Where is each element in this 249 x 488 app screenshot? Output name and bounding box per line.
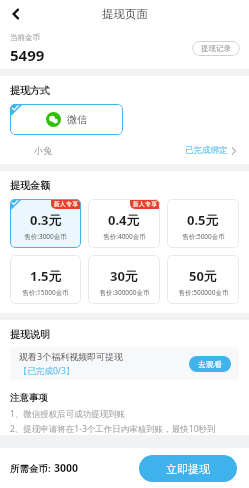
button[interactable]: 0.4元 bbox=[88, 199, 160, 248]
staticText: 新人专享 bbox=[54, 200, 78, 208]
button[interactable]: 30元 bbox=[88, 255, 160, 304]
staticText: 立即提现 bbox=[166, 462, 210, 476]
staticText: 5499 bbox=[10, 45, 45, 65]
staticText: 售价:5000金币 bbox=[182, 232, 225, 241]
staticText: 【已完成0/3】 bbox=[19, 365, 75, 377]
button[interactable]: 微信 bbox=[10, 104, 123, 135]
button[interactable]: 去观看 bbox=[189, 356, 231, 372]
staticText: 1.5元 bbox=[30, 267, 62, 285]
staticText: 提现说明 bbox=[10, 328, 50, 341]
staticText: 提现方式 bbox=[10, 84, 50, 97]
staticText: 提现页面 bbox=[102, 7, 148, 21]
staticText: 新人专享 bbox=[133, 200, 157, 208]
staticText: 去观看 bbox=[198, 359, 222, 369]
button[interactable]: 1.5元 bbox=[10, 255, 81, 304]
staticText: 30元 bbox=[110, 267, 138, 285]
staticText: 2、提现申请将在1-3个工作日内审核到账，最快10秒到 bbox=[10, 423, 216, 435]
staticText: 售价:300000金币 bbox=[99, 288, 150, 297]
staticText: 3000 bbox=[54, 461, 79, 475]
staticText: 注意事项 bbox=[10, 392, 48, 404]
staticText: 1、微信授权后可成功提现到账 bbox=[10, 408, 126, 420]
staticText: 售价:4000金币 bbox=[103, 232, 146, 241]
button[interactable]: 立即提现 bbox=[139, 455, 237, 482]
staticText: 微信 bbox=[67, 113, 87, 126]
button[interactable]: 50元 bbox=[167, 255, 239, 304]
staticText: 售价:3000金币 bbox=[24, 232, 67, 241]
button[interactable]: 提现记录 bbox=[192, 41, 240, 56]
staticText: 当前金币 bbox=[10, 33, 40, 42]
button[interactable]: 已完成绑定 bbox=[183, 143, 239, 158]
staticText: 售价:15000金币 bbox=[22, 288, 69, 297]
button[interactable]: 0.5元 bbox=[167, 199, 239, 248]
staticText: 50元 bbox=[189, 267, 217, 285]
staticText: 观看3个福利视频即可提现 bbox=[19, 350, 124, 362]
staticText: 已完成绑定 bbox=[185, 145, 228, 156]
button[interactable]: 返回 bbox=[5, 3, 27, 25]
staticText: 0.4元 bbox=[108, 211, 140, 229]
staticText: 0.5元 bbox=[187, 211, 219, 229]
staticText: 小兔 bbox=[34, 145, 52, 156]
button[interactable]: 0.3元 bbox=[10, 199, 81, 248]
staticText: 所需金币: bbox=[10, 462, 54, 475]
staticText: 提现金额 bbox=[10, 179, 50, 192]
staticText: 售价:500000金币 bbox=[178, 288, 229, 297]
staticText: 0.3元 bbox=[30, 211, 62, 229]
staticText: 提现记录 bbox=[201, 44, 231, 53]
